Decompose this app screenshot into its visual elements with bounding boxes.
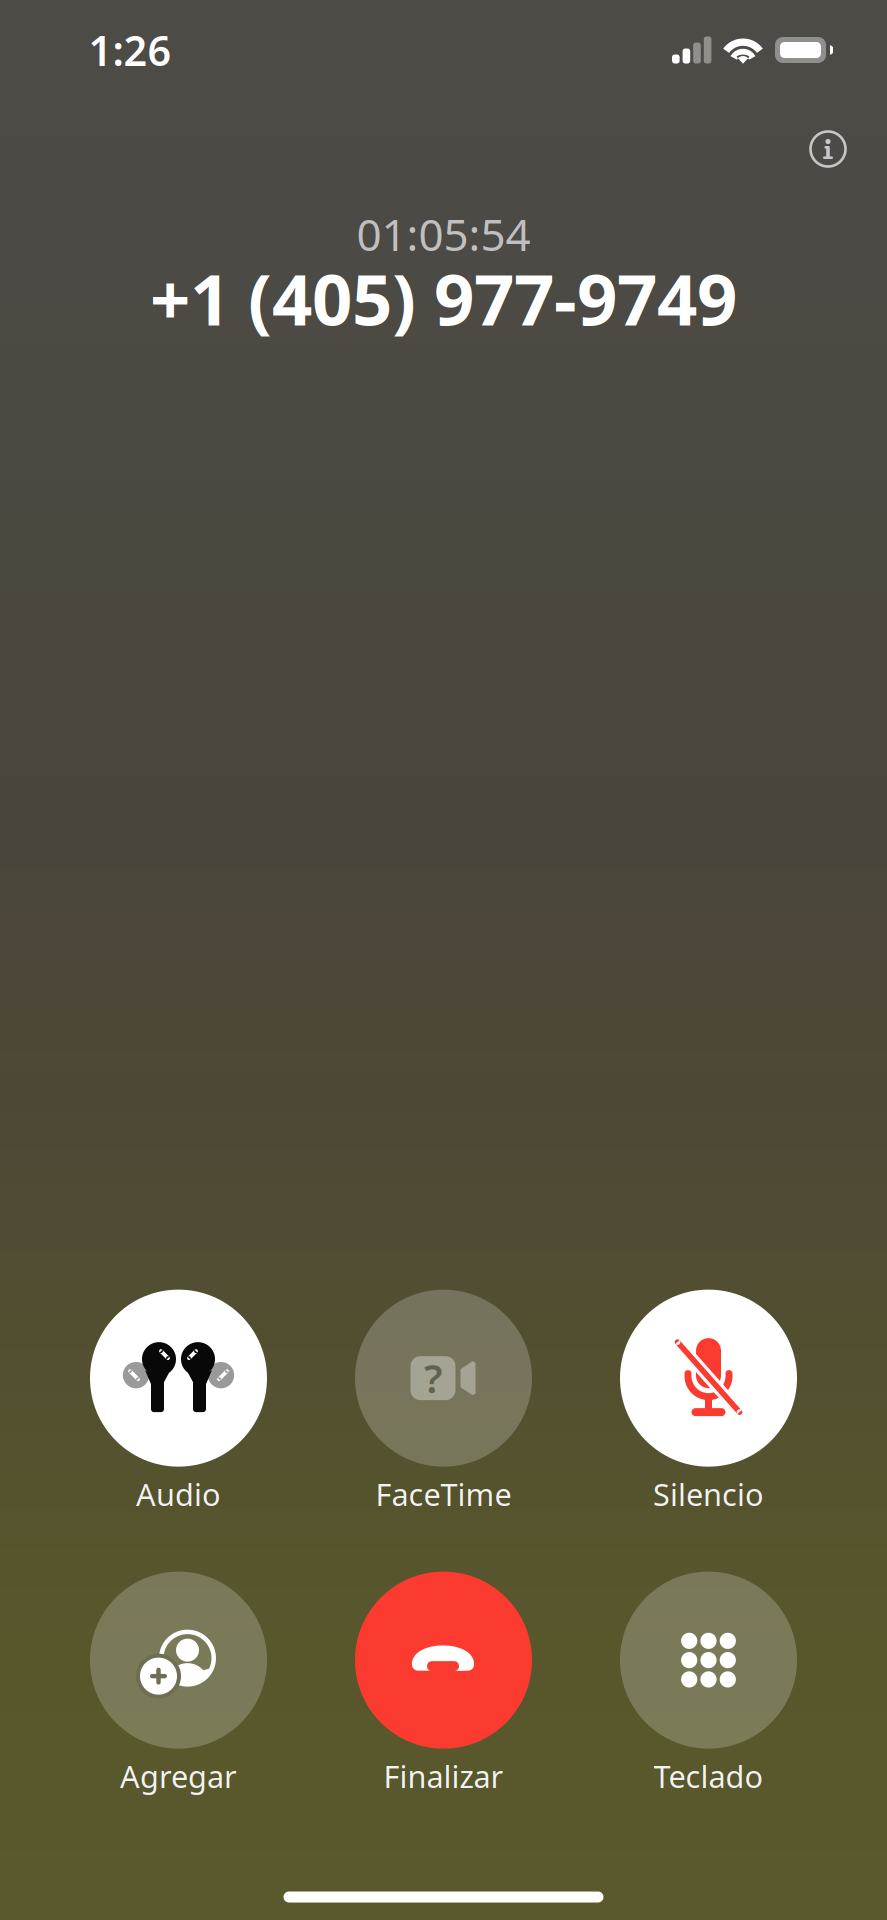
staticText: 1:26 bbox=[88, 23, 171, 77]
button[interactable]: Audio bbox=[53, 1261, 303, 1543]
button[interactable]: Agregar bbox=[53, 1543, 303, 1825]
button[interactable]: ? bbox=[318, 1261, 568, 1543]
button[interactable]: Finalizar bbox=[318, 1543, 568, 1825]
button[interactable]: Información de la llamada bbox=[792, 113, 864, 185]
staticText: Agregar bbox=[120, 1756, 237, 1796]
staticText: FaceTime bbox=[375, 1474, 511, 1514]
staticText: Audio bbox=[136, 1474, 221, 1514]
staticText: Teclado bbox=[653, 1756, 763, 1796]
staticText: Finalizar bbox=[383, 1756, 503, 1796]
button[interactable]: Teclado bbox=[583, 1543, 833, 1825]
staticText: 01:05:54 bbox=[356, 205, 530, 263]
staticText: ? bbox=[424, 1351, 442, 1404]
button[interactable]: Silencio bbox=[583, 1261, 833, 1543]
staticText: Silencio bbox=[653, 1474, 764, 1514]
staticText: +1 (405) 977-9749 bbox=[150, 251, 737, 345]
